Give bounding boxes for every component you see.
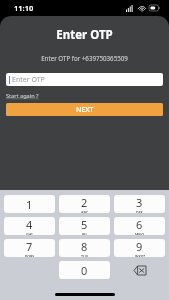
button[interactable]: 1 <box>4 195 55 213</box>
staticText: 7 <box>26 239 33 254</box>
staticText: 9 <box>136 239 143 254</box>
staticText: 4 <box>26 217 33 232</box>
staticText: MNO <box>135 232 145 235</box>
staticText: JKL <box>82 232 88 235</box>
staticText: PQRS <box>25 254 35 257</box>
button[interactable]: Enter OTP <box>6 73 163 86</box>
staticText: 3 <box>136 195 143 210</box>
staticText: 1 <box>26 197 33 212</box>
button[interactable]: NEXT <box>6 103 163 116</box>
staticText: 5 <box>81 217 88 232</box>
button[interactable]: 9 <box>114 239 165 257</box>
staticText: 2 <box>81 195 88 210</box>
button[interactable]: Backspace <box>114 261 165 279</box>
staticText: WXYZ <box>135 254 145 257</box>
staticText: 8 <box>81 239 88 254</box>
button[interactable]: 2 <box>59 195 110 213</box>
button[interactable]: 4 <box>4 217 55 235</box>
button[interactable]: 8 <box>59 239 110 257</box>
staticText: TUV <box>81 254 88 257</box>
button[interactable]: 5 <box>59 217 110 235</box>
staticText: 11:10 <box>14 3 34 13</box>
staticText: Enter OTP <box>0 27 169 43</box>
staticText: Start again ? <box>6 92 39 100</box>
staticText: Enter OTP <box>12 75 45 85</box>
button[interactable]: 7 <box>4 239 55 257</box>
button[interactable]: 0 <box>59 261 110 279</box>
staticText: 0 <box>81 263 88 278</box>
staticText: Enter OTP for +639750365509 <box>0 54 169 62</box>
staticText: GHI <box>26 232 33 235</box>
button[interactable]: Start again ? <box>6 92 39 100</box>
button[interactable]: 6 <box>114 217 165 235</box>
staticText: DEF <box>136 210 143 213</box>
staticText: ABC <box>81 210 89 213</box>
staticText: 6 <box>136 217 143 232</box>
staticText: NEXT <box>76 105 94 115</box>
button[interactable]: 3 <box>114 195 165 213</box>
